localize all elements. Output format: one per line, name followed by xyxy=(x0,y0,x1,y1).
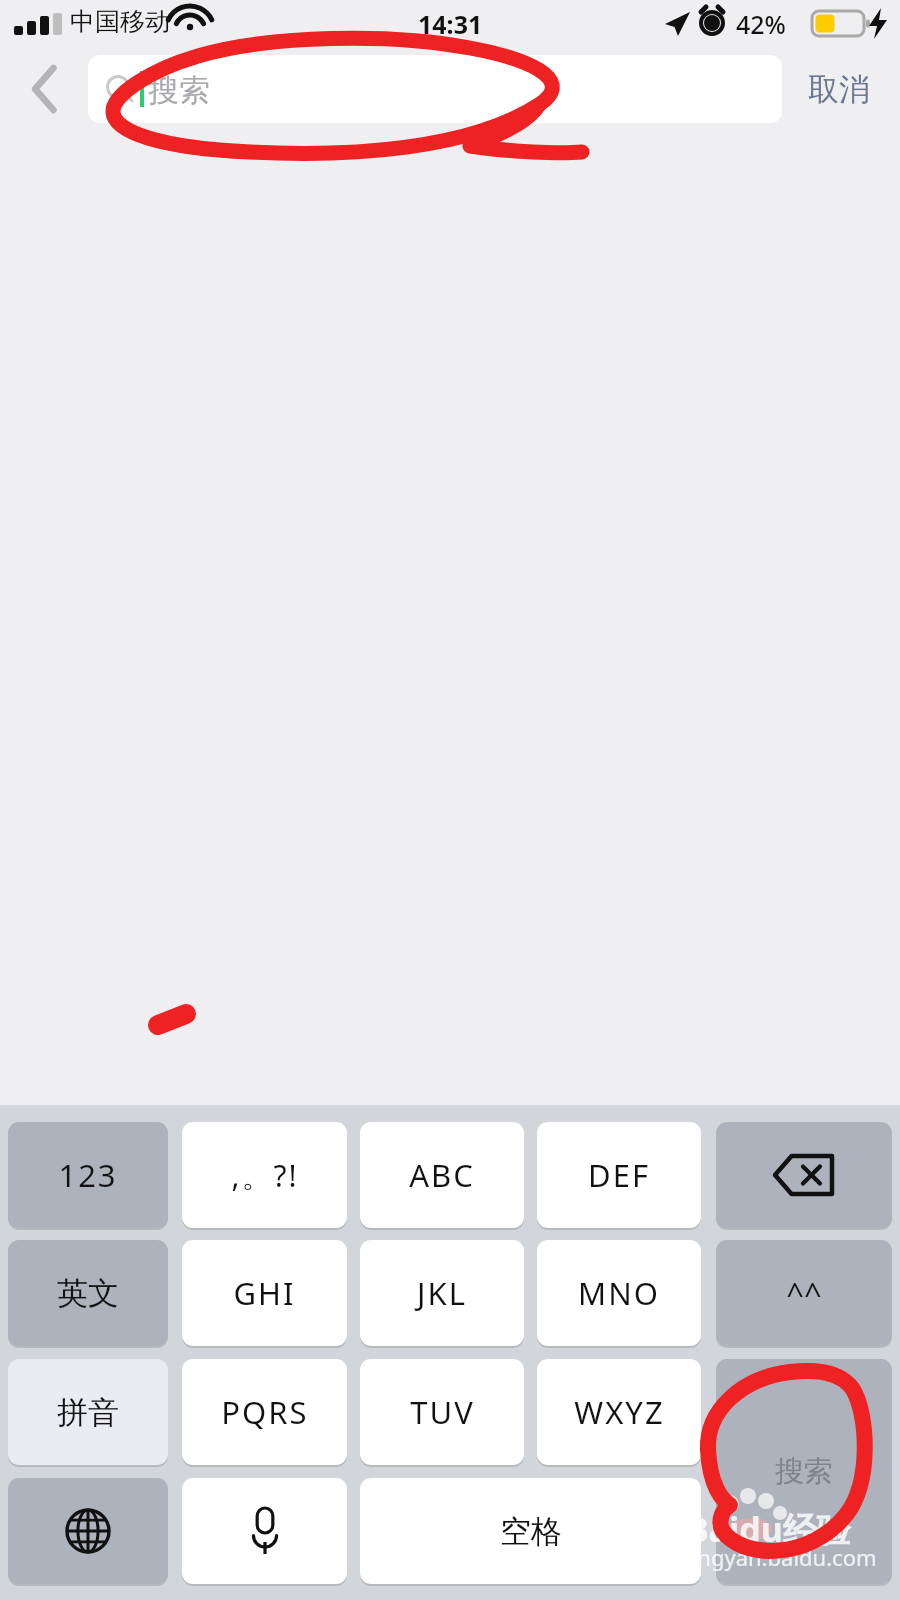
staticText: ^^ xyxy=(786,1272,822,1314)
staticText: GHI xyxy=(233,1272,296,1314)
staticText: 中国移动 xyxy=(70,6,170,37)
staticText: ,。?! xyxy=(231,1155,299,1196)
button[interactable]: PQRS xyxy=(182,1359,347,1465)
staticText: 搜索 xyxy=(148,71,210,110)
staticText: MNO xyxy=(578,1272,660,1314)
staticText: PQRS xyxy=(221,1391,309,1433)
button[interactable]: ^^ xyxy=(716,1240,892,1346)
staticText: 拼音 xyxy=(57,1393,119,1432)
button[interactable]: JKL xyxy=(360,1240,524,1346)
staticText: jingyan.baidu.com xyxy=(686,1542,877,1572)
staticText: JKL xyxy=(417,1272,467,1314)
staticText: 空格 xyxy=(500,1512,562,1551)
button[interactable]: 搜索 xyxy=(716,1359,892,1584)
button[interactable]: MNO xyxy=(537,1240,701,1346)
button[interactable]: 搜索 xyxy=(88,55,782,123)
button[interactable]: Voice input xyxy=(182,1478,347,1584)
button[interactable]: 123 xyxy=(8,1122,168,1228)
button[interactable]: Backspace xyxy=(716,1122,892,1228)
button[interactable]: Switch keyboard xyxy=(8,1478,168,1584)
staticText: 14:31 xyxy=(418,7,483,41)
staticText: 42% xyxy=(736,7,786,41)
button[interactable]: GHI xyxy=(182,1240,347,1346)
staticText: ABC xyxy=(409,1154,475,1196)
staticText: TUV xyxy=(410,1391,475,1433)
staticText: DEF xyxy=(588,1154,650,1196)
button[interactable]: WXYZ xyxy=(537,1359,701,1465)
button[interactable]: 取消 xyxy=(786,55,892,123)
staticText: 取消 xyxy=(808,70,870,109)
staticText: 搜索 xyxy=(775,1453,833,1490)
button[interactable]: 空格 xyxy=(360,1478,701,1584)
staticText: Baidu经验 xyxy=(686,1506,851,1552)
staticText: WXYZ xyxy=(574,1391,665,1433)
button[interactable]: 英文 xyxy=(8,1240,168,1346)
button[interactable]: ,。?! xyxy=(182,1122,347,1228)
button[interactable]: DEF xyxy=(537,1122,701,1228)
staticText: 123 xyxy=(58,1154,118,1196)
button[interactable]: ABC xyxy=(360,1122,524,1228)
button[interactable]: 拼音 xyxy=(8,1359,168,1465)
button[interactable]: TUV xyxy=(360,1359,524,1465)
staticText: 英文 xyxy=(57,1274,119,1313)
button[interactable]: Back xyxy=(14,52,78,126)
